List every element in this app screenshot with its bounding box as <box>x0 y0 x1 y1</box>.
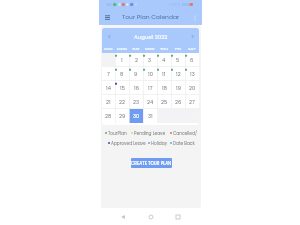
button[interactable]: 5 <box>171 53 185 67</box>
button[interactable]: 24 <box>143 95 157 109</box>
button[interactable]: 14 <box>102 81 115 95</box>
staticText: 1 <box>121 57 123 64</box>
staticText: 18 <box>162 85 167 92</box>
staticText: 3 <box>148 57 152 64</box>
button[interactable]: Open navigation menu <box>103 13 112 22</box>
button[interactable]: Back <box>118 212 128 222</box>
button[interactable]: 21 <box>102 95 115 109</box>
staticText: Approved Leave <box>111 140 146 146</box>
button[interactable]: 26 <box>171 95 185 109</box>
button[interactable]: 22 <box>115 95 129 109</box>
button[interactable]: 12 <box>171 67 185 81</box>
button[interactable]: 13 <box>185 67 199 81</box>
button[interactable]: 7 <box>102 67 115 81</box>
staticText: 24 <box>147 99 154 106</box>
staticText: 27 <box>189 99 195 106</box>
button[interactable]: Recent apps <box>173 212 183 222</box>
staticText: SUN <box>104 46 113 52</box>
staticText: 26 <box>175 99 182 106</box>
staticText: 21 <box>106 99 111 106</box>
button[interactable]: 4 <box>157 53 171 67</box>
staticText: 22 <box>119 99 125 106</box>
staticText: TourPlan <box>108 130 127 136</box>
button[interactable]: Home <box>146 212 156 222</box>
staticText: Date Back <box>173 140 195 146</box>
staticText: 6 <box>190 57 194 64</box>
button[interactable]: 17 <box>143 81 157 95</box>
staticText: 28 <box>105 113 112 120</box>
staticText: 4 <box>162 57 166 64</box>
staticText: FRI <box>175 46 181 52</box>
staticText: 15 <box>120 85 125 92</box>
staticText: SAT <box>188 46 196 52</box>
button[interactable]: 20 <box>185 81 199 95</box>
staticText: Pending Leave <box>134 130 166 136</box>
button[interactable]: Previous month <box>102 28 116 45</box>
button[interactable]: 28 <box>102 109 115 123</box>
staticText: Holiday <box>151 140 168 146</box>
button[interactable]: More options <box>189 12 200 23</box>
staticText: 19 <box>176 85 181 92</box>
button[interactable]: 11 <box>157 67 171 81</box>
staticText: 13 <box>190 71 195 78</box>
staticText: August 2022 <box>134 33 168 41</box>
button[interactable]: 1 <box>115 53 129 67</box>
button[interactable]: Next month <box>185 28 199 45</box>
staticText: Tour Plan Calendar <box>122 13 180 21</box>
staticText: 12 <box>176 71 181 78</box>
staticText: CREATE TOUR PLAN <box>131 160 172 166</box>
staticText: 7 <box>107 71 110 78</box>
button[interactable]: 23 <box>129 95 143 109</box>
staticText: 8 <box>120 71 124 78</box>
button[interactable]: 9 <box>129 67 143 81</box>
button[interactable]: 16 <box>129 81 143 95</box>
button[interactable]: 31 <box>143 109 157 123</box>
button[interactable]: 6 <box>185 53 199 67</box>
staticText: 10 <box>148 71 153 78</box>
staticText: 17 <box>148 85 153 92</box>
button[interactable]: 27 <box>185 95 199 109</box>
staticText: TUE <box>132 46 140 52</box>
staticText: 29 <box>119 113 126 120</box>
staticText: 31 <box>148 113 153 120</box>
staticText: 9 <box>134 71 138 78</box>
button[interactable]: CREATE TOUR PLAN <box>131 158 172 168</box>
button[interactable]: 3 <box>143 53 157 67</box>
staticText: 23 <box>133 99 139 106</box>
button[interactable]: 19 <box>171 81 185 95</box>
staticText: 2 <box>135 57 138 64</box>
staticText: Cancelled/ <box>173 130 197 136</box>
staticText: 25 <box>161 99 168 106</box>
button[interactable]: 18 <box>157 81 171 95</box>
staticText: THU <box>160 46 169 52</box>
staticText: MON <box>117 46 127 52</box>
staticText: 14 <box>106 85 111 92</box>
staticText: 30 <box>133 113 140 120</box>
staticText: 11 <box>162 71 166 78</box>
staticText: 16 <box>134 85 139 92</box>
button[interactable]: 30 <box>129 109 143 123</box>
button[interactable]: 2 <box>129 53 143 67</box>
button[interactable]: 8 <box>115 67 129 81</box>
button[interactable]: 10 <box>143 67 157 81</box>
staticText: 5 <box>176 57 180 64</box>
staticText: 20 <box>189 85 196 92</box>
button[interactable]: 15 <box>115 81 129 95</box>
staticText: WED <box>145 46 155 52</box>
button[interactable]: 29 <box>115 109 129 123</box>
button[interactable]: 25 <box>157 95 171 109</box>
